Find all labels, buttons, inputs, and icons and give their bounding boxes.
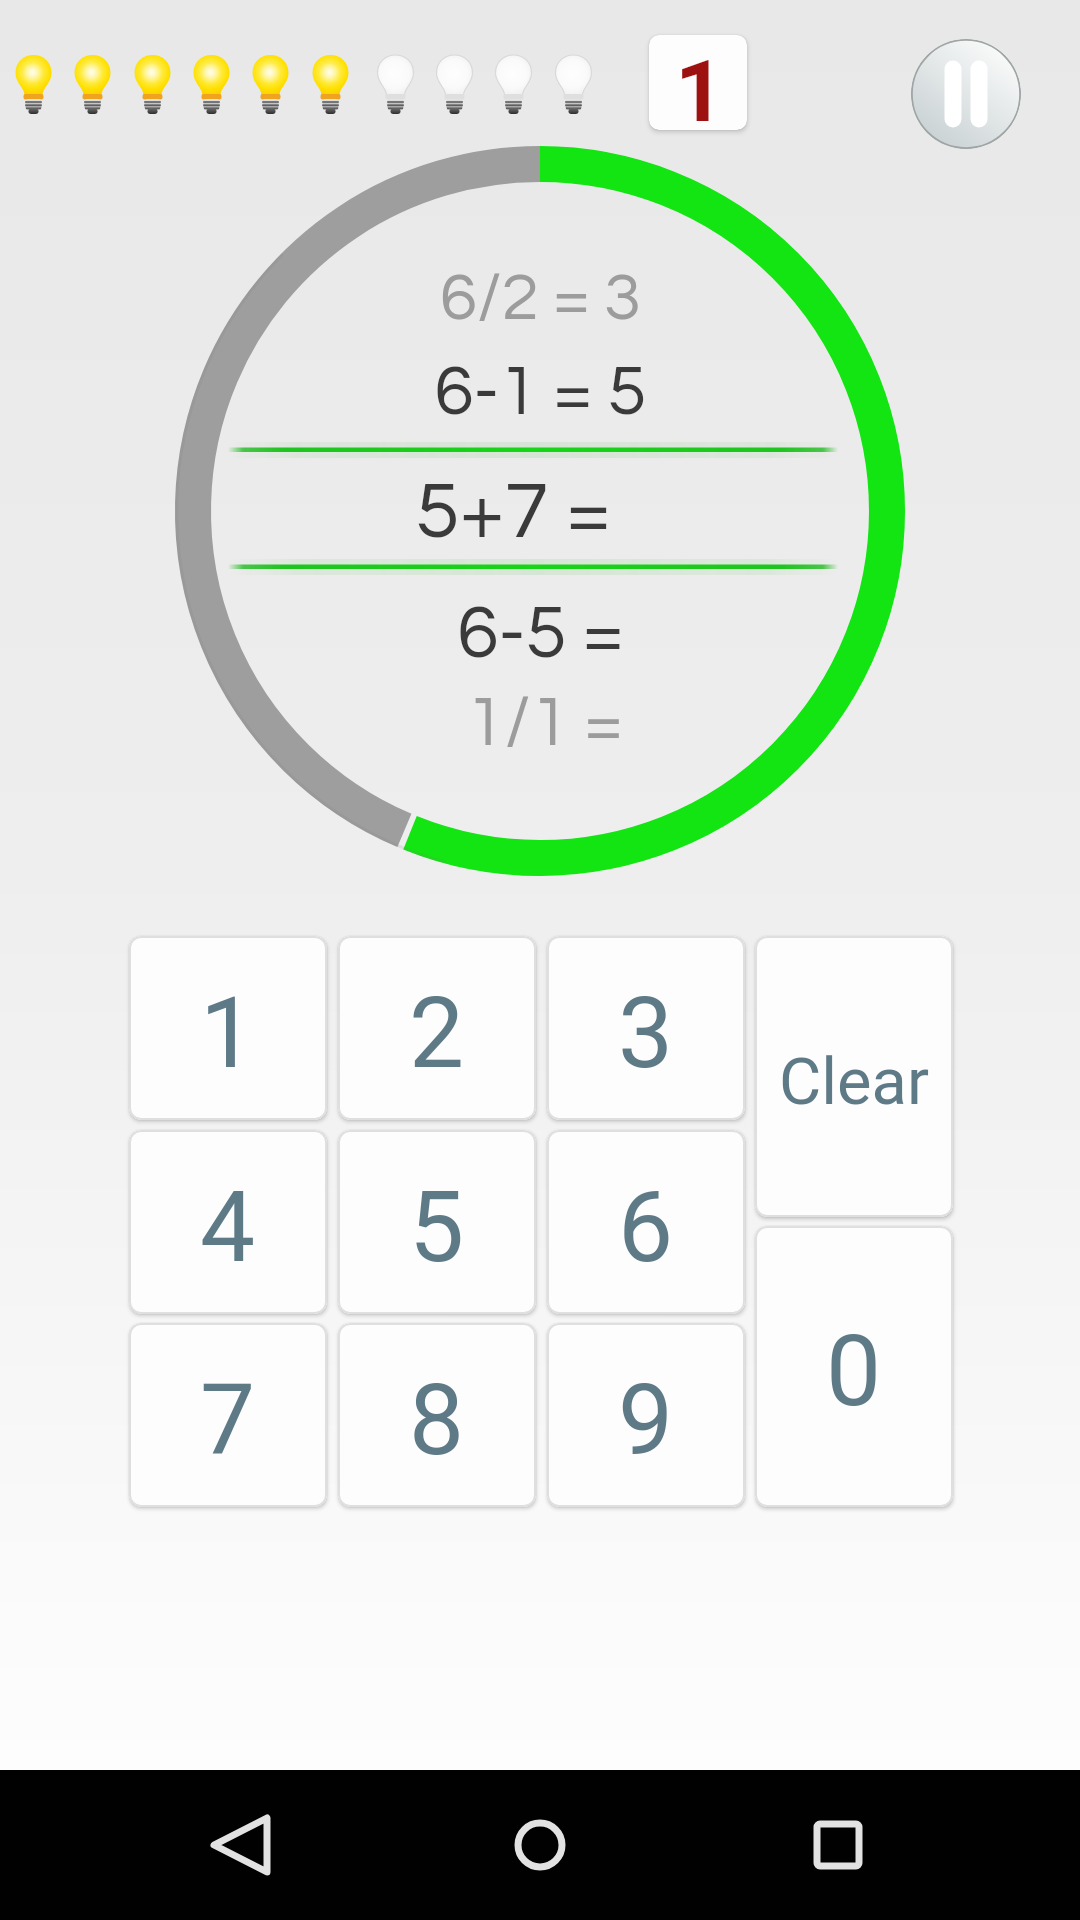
button[interactable]: 5 <box>338 1130 536 1314</box>
button[interactable]: 6 <box>547 1130 745 1314</box>
staticText: 7 <box>200 1363 256 1478</box>
button[interactable] <box>490 1795 590 1895</box>
staticText: 5+7 = <box>415 471 611 554</box>
staticText: 6-1 = 5 <box>434 356 647 429</box>
button[interactable] <box>911 39 1021 149</box>
button[interactable]: 0 <box>755 1226 953 1507</box>
button[interactable]: 2 <box>338 936 536 1120</box>
staticText: 0 <box>826 1314 882 1429</box>
button[interactable] <box>190 1795 290 1895</box>
staticText: 1 <box>200 976 256 1091</box>
button[interactable]: Clear <box>755 936 953 1217</box>
button[interactable]: 9 <box>547 1323 745 1507</box>
staticText: 5 <box>409 1170 465 1285</box>
button[interactable] <box>788 1795 888 1895</box>
staticText: 2 <box>409 976 465 1091</box>
staticText: 6/2 = 3 <box>440 264 641 333</box>
staticText: 6-5 = <box>457 595 624 672</box>
button[interactable]: 7 <box>129 1323 327 1507</box>
button[interactable]: 1 <box>129 936 327 1120</box>
staticText: 3 <box>618 976 674 1091</box>
staticText: 9 <box>618 1363 674 1478</box>
button[interactable]: 8 <box>338 1323 536 1507</box>
staticText: 6 <box>618 1170 674 1285</box>
staticText: 1 <box>675 41 725 130</box>
staticText: 8 <box>409 1363 465 1478</box>
staticText: 4 <box>200 1170 256 1285</box>
button[interactable]: 1 <box>649 35 747 130</box>
button[interactable]: 3 <box>547 936 745 1120</box>
button[interactable]: 4 <box>129 1130 327 1314</box>
staticText: 1/1 = <box>466 688 623 760</box>
staticText: Clear <box>779 1044 929 1120</box>
